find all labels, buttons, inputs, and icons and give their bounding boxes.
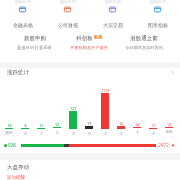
staticText: 新股申购 (24, 35, 46, 42)
staticText: 热 (96, 35, 100, 39)
staticText: 75 (87, 121, 92, 126)
staticText: 跌停 (5, 131, 13, 136)
button[interactable]: 大盘异动 (7, 164, 175, 171)
staticText: 51 (55, 122, 60, 127)
staticText: 54 (167, 122, 172, 127)
staticText: 37 (151, 123, 156, 128)
staticText: 金融日历 (104, 0, 121, 4)
staticText: 1178 (101, 88, 110, 93)
staticText: 金融日历 (59, 0, 76, 4)
button[interactable]: 图形指标 (135, 6, 180, 28)
staticText: 8 (24, 123, 27, 128)
staticText: -9 (23, 131, 27, 136)
other: More (170, 70, 175, 75)
staticText: 涨跌统计 (7, 69, 29, 76)
button[interactable]: 新股申购 (17, 35, 52, 51)
staticText: 公司财报 (58, 22, 78, 28)
staticText: -7 (39, 131, 43, 136)
staticText: 2472 (158, 142, 169, 148)
staticText: 金融日历 (14, 0, 31, 4)
staticText: 82 (119, 121, 124, 126)
button[interactable]: 大宗交易 (90, 6, 135, 28)
staticText: 9 (152, 131, 155, 136)
staticText: -5 (55, 130, 59, 135)
staticText: 大宗交易 (103, 22, 123, 28)
staticText: 0 (88, 131, 91, 136)
staticText: 金融表格 (13, 22, 33, 28)
staticText: 7 (136, 130, 139, 135)
staticText: 48 (135, 122, 140, 127)
button[interactable]: 科创板 (70, 35, 108, 50)
staticText: 异动提醒 (7, 175, 25, 180)
staticText: 开通权限及开户条件 (70, 45, 108, 50)
staticText: 14 (7, 123, 12, 128)
button[interactable]: 公司财报 (45, 6, 90, 28)
staticText: 金融日历 (149, 0, 166, 4)
staticText: -3 (71, 131, 75, 136)
button[interactable]: 涨跌统计 (7, 69, 175, 76)
staticText: 21 (39, 123, 44, 128)
staticText: 5 (120, 131, 123, 136)
staticText: 572 (70, 106, 77, 111)
staticText: 新股日历 打新必看 (17, 45, 52, 51)
staticText: 港股通之窗 (130, 35, 158, 42)
staticText: 图形指标 (148, 22, 168, 28)
staticText: 926 (8, 142, 16, 148)
button[interactable]: 港股通之窗 (125, 35, 163, 50)
staticText: 3 (104, 131, 107, 136)
button[interactable]: 金融表格 (0, 6, 45, 28)
staticText: 今日额度及实时资讯 (125, 45, 163, 50)
staticText: 涨停 (165, 130, 173, 135)
staticText: 科创板 (76, 35, 93, 42)
staticText: 大盘异动 (7, 164, 29, 171)
